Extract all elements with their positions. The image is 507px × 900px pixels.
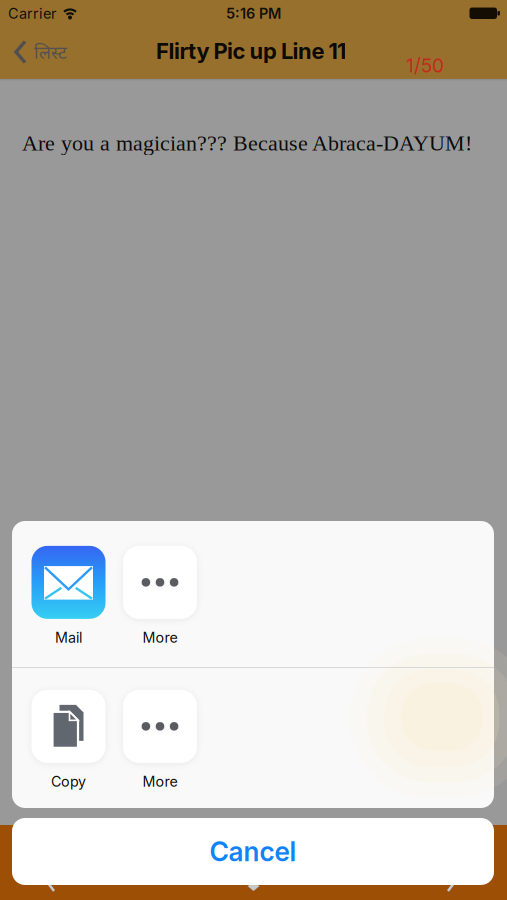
button[interactable]: Next: [448, 883, 456, 893]
button[interactable]: Cancel: [12, 818, 494, 885]
staticText: लिस्ट: [34, 40, 67, 64]
button[interactable]: Mail: [31, 546, 105, 646]
staticText: Flirty Pic up Line 11: [156, 38, 346, 64]
staticText: 1/50: [406, 54, 444, 77]
staticText: More: [142, 773, 177, 790]
button[interactable]: Hide: [247, 883, 259, 891]
staticText: Cancel: [209, 835, 296, 868]
button[interactable]: Back: [14, 32, 134, 72]
button[interactable]: Previous: [48, 883, 56, 893]
button[interactable]: More: [123, 690, 197, 790]
staticText: Copy: [51, 773, 86, 790]
staticText: Carrier: [8, 5, 56, 22]
staticText: Are you a magician??? Because Abraca-DAY…: [22, 131, 472, 155]
button[interactable]: Copy: [31, 690, 105, 790]
staticText: More: [142, 629, 177, 646]
staticText: 5:16 PM: [226, 5, 281, 22]
staticText: Mail: [55, 629, 82, 646]
button[interactable]: More: [123, 546, 197, 646]
